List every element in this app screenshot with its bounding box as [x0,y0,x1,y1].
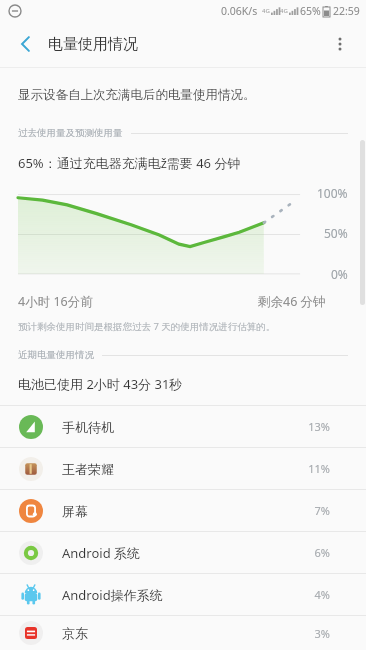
staticText: 过去使用量及预测使用量 [18,127,123,139]
staticText: 65%：通过充电器充满电ž需要 46 分钟 [18,154,241,172]
staticText: 22:59 [333,4,360,18]
staticText: 剩余46 分钟 [258,293,326,310]
staticText: 4G [262,7,270,15]
button[interactable]: Android 系统 [0,532,366,573]
staticText: 屏幕 [62,503,314,519]
staticText: 6% [314,545,330,560]
staticText: 7% [314,503,330,518]
button[interactable]: 王者荣耀 [0,448,366,489]
button[interactable]: 屏幕 [0,490,366,531]
button[interactable]: 手机待机 [0,406,366,447]
button[interactable]: Back [6,24,46,64]
button[interactable]: Android操作系统 [0,574,366,615]
staticText: 京东 [62,625,314,641]
staticText: Android操作系统 [62,586,314,604]
staticText: 13% [308,419,330,434]
staticText: 显示设备自上次充满电后的电量使用情况。 [18,87,256,103]
staticText: 近期电量使用情况 [18,349,94,361]
staticText: 11% [308,461,330,476]
staticText: 50% [324,225,348,241]
staticText: 王者荣耀 [62,461,308,477]
staticText: Android 系统 [62,544,314,562]
button[interactable]: More options [320,24,360,64]
staticText: 电池已使用 2小时 43分 31秒 [18,375,183,393]
staticText: 4% [314,587,330,602]
staticText: 预计剩余使用时间是根据您过去 7 天的使用情况进行估算的。 [18,320,276,333]
staticText: 0.06K/s [221,4,258,18]
staticText: 电量使用情况 [48,35,138,54]
staticText: 4G [280,7,288,15]
staticText: 4小时 16分前 [18,293,93,310]
staticText: 65% [300,4,321,18]
button[interactable]: 京东 [0,616,366,650]
staticText: 100% [317,185,348,201]
staticText: 0% [331,266,348,282]
staticText: 手机待机 [62,419,308,435]
staticText: 3% [314,626,330,641]
